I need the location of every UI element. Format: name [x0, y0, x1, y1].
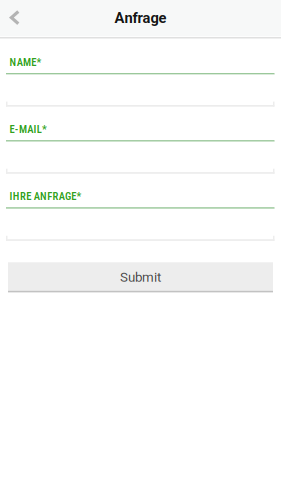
staticText: NAME* [9, 56, 41, 68]
staticText: E-MAIL* [9, 123, 47, 136]
staticText: Anfrage [114, 9, 166, 27]
button[interactable]: Submit [8, 262, 273, 292]
button[interactable]: Back [0, 0, 30, 36]
staticText: IHRE ANFRAGE* [9, 190, 81, 203]
staticText: Submit [120, 269, 161, 285]
